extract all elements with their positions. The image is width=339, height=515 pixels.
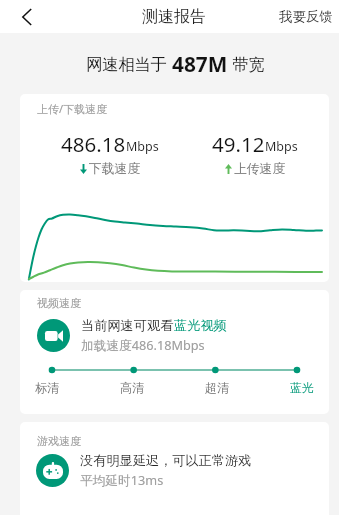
staticText: 上传/下载速度 bbox=[37, 101, 108, 116]
staticText: 蓝光视频 bbox=[174, 317, 227, 334]
staticText: 蓝光 bbox=[290, 380, 314, 395]
staticText: 487M bbox=[172, 50, 228, 78]
staticText: Mbps bbox=[265, 138, 298, 155]
staticText: 视频速度 bbox=[37, 296, 81, 310]
staticText: 486.18 bbox=[61, 130, 126, 158]
staticText: 没有明显延迟，可以正常游戏 bbox=[80, 452, 252, 469]
button[interactable]: Back bbox=[0, 0, 54, 33]
staticText: 标清 bbox=[35, 380, 59, 395]
button[interactable]: 蓝光 bbox=[290, 380, 314, 395]
staticText: 我要反馈 bbox=[279, 8, 333, 25]
staticText: 带宽 bbox=[228, 53, 265, 75]
button[interactable]: 标清 bbox=[35, 380, 59, 395]
staticText: 上传速度 bbox=[234, 161, 286, 177]
staticText: 高清 bbox=[120, 380, 144, 395]
staticText: 超清 bbox=[205, 380, 229, 395]
button[interactable]: 我要反馈 bbox=[269, 0, 339, 33]
staticText: 下载速度 bbox=[89, 161, 141, 177]
staticText: 当前网速可观看 bbox=[81, 317, 174, 334]
button[interactable]: 超清 bbox=[205, 380, 229, 395]
staticText: 49.12 bbox=[212, 130, 265, 158]
staticText: 测速报告 bbox=[142, 7, 206, 27]
staticText: 游戏速度 bbox=[37, 434, 81, 448]
staticText: 网速相当于 bbox=[86, 53, 172, 75]
staticText: 平均延时13ms bbox=[80, 471, 164, 488]
staticText: Mbps bbox=[126, 138, 159, 155]
staticText: 加载速度486.18Mbps bbox=[81, 336, 205, 353]
button[interactable]: 高清 bbox=[120, 380, 144, 395]
